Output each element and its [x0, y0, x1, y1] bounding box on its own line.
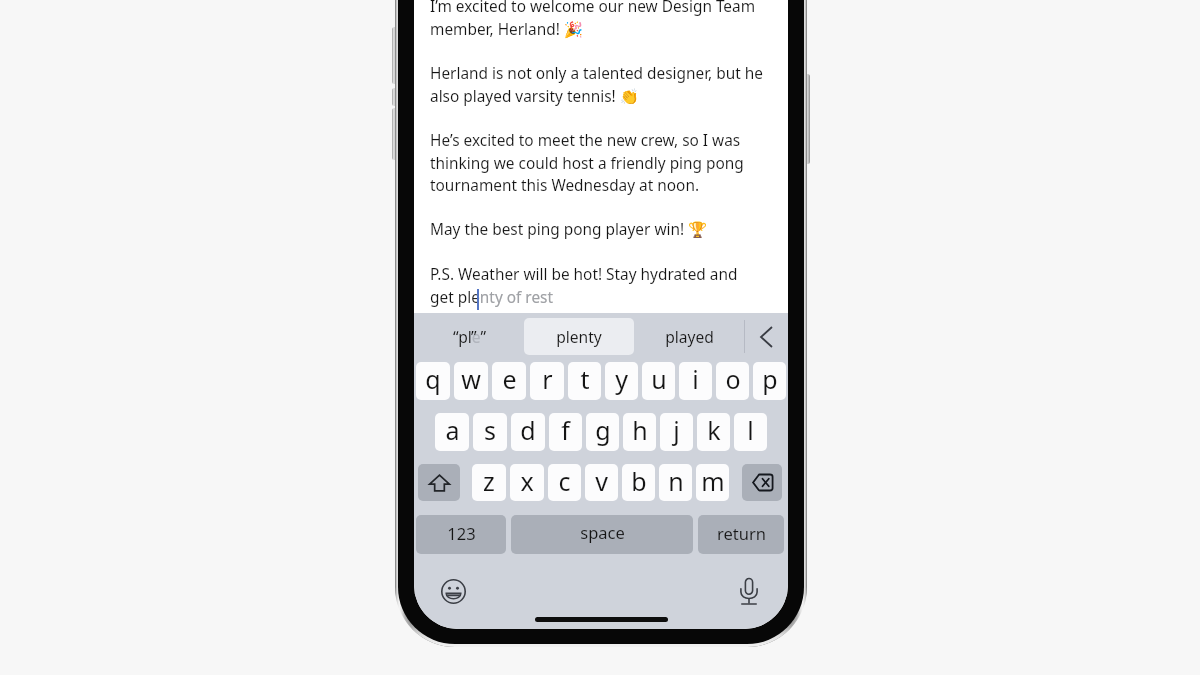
staticText: d — [520, 413, 536, 447]
button[interactable]: 123 — [416, 515, 506, 554]
button[interactable]: p — [753, 362, 786, 400]
button[interactable]: u — [642, 362, 675, 400]
button[interactable]: k — [697, 413, 730, 451]
staticText: o — [725, 362, 741, 396]
staticText: Herland is not only a talented designer,… — [430, 63, 764, 106]
staticText: f — [561, 413, 570, 447]
staticText: b — [631, 464, 647, 498]
staticText: He’s excited to meet the new crew, so I … — [430, 130, 764, 195]
button[interactable]: return — [698, 515, 784, 554]
button[interactable]: y — [605, 362, 638, 400]
staticText: w — [461, 362, 481, 396]
button[interactable]: w — [454, 362, 488, 400]
staticText: k — [707, 413, 721, 447]
staticText: g — [595, 413, 611, 447]
button[interactable]: space — [511, 515, 693, 554]
button[interactable]: q — [416, 362, 450, 400]
staticText: x — [520, 464, 534, 498]
staticText: p — [762, 362, 778, 396]
staticText: v — [595, 464, 608, 498]
button[interactable]: Dictation — [732, 574, 766, 608]
button[interactable]: n — [659, 464, 692, 501]
button[interactable]: played — [634, 313, 744, 360]
button[interactable]: b — [622, 464, 655, 501]
staticText: u — [651, 362, 667, 396]
button[interactable]: o — [716, 362, 749, 400]
button[interactable]: “ple” — [414, 313, 524, 360]
staticText: space — [580, 521, 625, 543]
staticText: I’m excited to welcome our new Design Te… — [430, 0, 764, 39]
button[interactable]: plenty — [524, 318, 634, 355]
button[interactable]: Previous suggestions — [744, 313, 788, 360]
staticText: z — [483, 464, 495, 498]
staticText: l — [747, 413, 754, 447]
button[interactable]: a — [435, 413, 469, 451]
staticText: s — [484, 413, 496, 447]
staticText: 123 — [447, 522, 476, 544]
staticText: plenty — [556, 326, 602, 347]
button[interactable]: r — [530, 362, 564, 400]
button[interactable]: h — [623, 413, 656, 451]
staticText: P.S. Weather will be hot! Stay hydrated … — [430, 264, 764, 307]
button[interactable]: c — [548, 464, 581, 501]
button[interactable]: e — [492, 362, 526, 400]
button[interactable]: t — [568, 362, 601, 400]
staticText: played — [665, 326, 714, 347]
staticText: r — [542, 362, 553, 396]
button[interactable]: j — [660, 413, 693, 451]
staticText: ” — [471, 326, 477, 347]
staticText: m — [701, 464, 725, 498]
button[interactable]: v — [585, 464, 618, 501]
button[interactable]: Emoji keyboard — [436, 574, 470, 608]
staticText: e — [502, 362, 517, 396]
button[interactable]: Backspace — [742, 464, 782, 501]
button[interactable]: x — [510, 464, 544, 501]
button[interactable]: s — [473, 413, 507, 451]
button[interactable]: Shift — [418, 464, 460, 501]
button[interactable]: i — [679, 362, 712, 400]
staticText: return — [717, 522, 766, 544]
staticText: q — [425, 362, 441, 396]
staticText: “ple” — [453, 326, 486, 347]
button[interactable]: d — [511, 413, 545, 451]
staticText: May the best ping pong player win! 🏆 — [430, 219, 708, 240]
staticText: t — [580, 362, 590, 396]
button[interactable]: z — [472, 464, 506, 501]
staticText: a — [445, 413, 460, 447]
staticText: i — [692, 362, 699, 396]
staticText: h — [632, 413, 648, 447]
staticText: j — [673, 413, 680, 447]
staticText: c — [558, 464, 571, 498]
staticText: n — [668, 464, 684, 498]
button[interactable]: m — [696, 464, 729, 501]
button[interactable]: f — [549, 413, 582, 451]
button[interactable]: l — [734, 413, 767, 451]
button[interactable]: g — [586, 413, 619, 451]
staticText: y — [615, 362, 628, 396]
